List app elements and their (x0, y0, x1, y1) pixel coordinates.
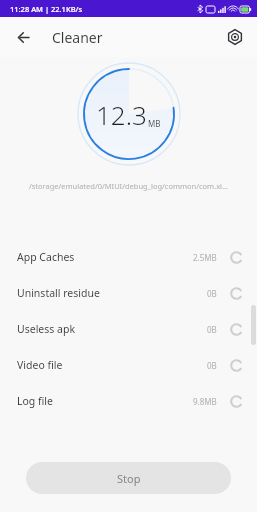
button[interactable]: Stop (26, 462, 231, 494)
staticText: 0B (207, 288, 217, 299)
button[interactable]: Log file (0, 383, 257, 419)
staticText: 12.3 (96, 97, 147, 132)
staticText: 0B (207, 324, 217, 335)
staticText: 2.5MB (193, 252, 217, 263)
staticText: /storage/emulated/0/MIUI/debug_log/commo… (14, 181, 243, 191)
staticText: Uninstall residue (17, 286, 100, 300)
staticText: App Caches (17, 250, 75, 264)
staticText: Log file (17, 394, 53, 408)
button[interactable]: Video file (0, 347, 257, 383)
staticText: Useless apk (17, 322, 76, 336)
staticText: Cleaner (52, 28, 103, 47)
staticText: Stop (117, 471, 141, 486)
staticText: MB (148, 118, 161, 129)
staticText: 9.8MB (193, 396, 217, 407)
staticText: Video file (17, 358, 63, 372)
staticText: 11:28 AM | 22.1KB/s (10, 4, 83, 14)
button[interactable]: Uninstall residue (0, 275, 257, 311)
button[interactable]: App Caches (0, 239, 257, 275)
button[interactable]: Back (6, 22, 36, 52)
button[interactable]: Settings (221, 23, 249, 51)
button[interactable]: Useless apk (0, 311, 257, 347)
staticText: 0B (207, 360, 217, 371)
